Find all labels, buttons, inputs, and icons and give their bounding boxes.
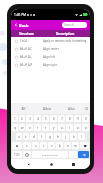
staticText: Alt+H,A,L xyxy=(20,55,32,59)
button[interactable]: t xyxy=(42,124,49,131)
staticText: 0 xyxy=(85,117,87,121)
button[interactable]: c xyxy=(40,142,47,149)
button[interactable]: Backspace xyxy=(80,142,89,149)
button[interactable]: y xyxy=(50,124,57,131)
button[interactable]: 3 xyxy=(26,115,33,122)
staticText: 2 xyxy=(21,117,23,121)
button[interactable]: v xyxy=(48,142,55,149)
button[interactable]: h xyxy=(54,133,61,140)
staticText: u xyxy=(61,126,63,130)
staticText: English (India) xyxy=(42,153,58,156)
button[interactable]: . xyxy=(69,151,77,158)
button[interactable]: j xyxy=(62,133,69,140)
button[interactable]: g xyxy=(46,133,53,140)
button[interactable]: r xyxy=(34,124,41,131)
staticText: g xyxy=(49,135,51,139)
staticText: y xyxy=(53,126,55,130)
button[interactable]: Alt+H,A,C xyxy=(11,45,90,53)
staticText: i xyxy=(69,126,70,130)
staticText: Align left xyxy=(43,55,55,59)
staticText: Search xyxy=(64,23,74,27)
staticText: k xyxy=(73,135,75,139)
button[interactable]: Alive xyxy=(59,103,83,114)
button[interactable]: 6 xyxy=(50,115,57,122)
button[interactable]: More suggestions xyxy=(83,103,90,114)
button[interactable]: 4 xyxy=(34,115,41,122)
button[interactable]: 'All' xyxy=(11,103,35,114)
button[interactable]: Allow xyxy=(35,103,59,114)
staticText: s xyxy=(25,135,27,139)
staticText: Description xyxy=(56,32,75,36)
button[interactable]: Emoji xyxy=(23,151,31,158)
button[interactable]: English (India) xyxy=(32,151,68,158)
staticText: 8 xyxy=(69,117,71,121)
staticText: x xyxy=(35,144,37,148)
staticText: Structure xyxy=(19,32,34,36)
staticText: 'All' xyxy=(21,107,26,111)
staticText: n xyxy=(67,144,69,148)
staticText: a xyxy=(18,135,20,139)
button[interactable]: a xyxy=(16,133,22,140)
staticText: Allow xyxy=(43,107,51,111)
staticText: Alt+H,A,C xyxy=(20,47,33,51)
staticText: v xyxy=(51,144,53,148)
staticText: Back xyxy=(19,23,29,28)
button[interactable]: z xyxy=(23,142,31,149)
staticText: f xyxy=(41,135,43,139)
button[interactable]: Alt+H,A,R xyxy=(11,61,90,69)
button[interactable]: u xyxy=(58,124,65,131)
button[interactable]: Alt+H,A,L xyxy=(11,53,90,61)
button[interactable]: 1 xyxy=(12,115,18,122)
button[interactable]: 5 xyxy=(42,115,49,122)
button[interactable]: p xyxy=(82,124,89,131)
staticText: Alive xyxy=(68,107,75,111)
button[interactable]: q xyxy=(12,124,18,131)
button[interactable]: 2 xyxy=(19,115,25,122)
staticText: . xyxy=(73,153,74,157)
staticText: e xyxy=(29,126,31,130)
button[interactable]: 8 xyxy=(66,115,73,122)
staticText: o xyxy=(77,126,79,130)
button[interactable]: m xyxy=(72,142,79,149)
staticText: c xyxy=(43,144,45,148)
staticText: b xyxy=(59,144,61,148)
button[interactable]: Enter xyxy=(78,151,89,158)
button[interactable]: 7 xyxy=(58,115,65,122)
button[interactable]: b xyxy=(56,142,63,149)
button[interactable]: l xyxy=(78,133,85,140)
staticText: 4 xyxy=(37,117,39,121)
button[interactable]: e xyxy=(26,124,33,131)
button[interactable]: Recents xyxy=(68,159,78,169)
staticText: p xyxy=(85,126,87,130)
staticText: Alt+H,A,R xyxy=(20,63,33,67)
button[interactable]: Back xyxy=(11,20,90,30)
button[interactable]: Search xyxy=(62,22,87,28)
button[interactable]: s xyxy=(23,133,29,140)
button[interactable]: 0 xyxy=(82,115,89,122)
button[interactable]: Back xyxy=(23,159,33,169)
staticText: 9 xyxy=(77,117,79,121)
staticText: 6 xyxy=(53,117,55,121)
button[interactable]: Shift xyxy=(12,142,22,149)
button[interactable]: w xyxy=(19,124,25,131)
staticText: w xyxy=(21,126,24,130)
staticText: 7 xyxy=(61,117,63,121)
staticText: r xyxy=(37,126,39,130)
button[interactable]: i xyxy=(66,124,73,131)
button[interactable]: Home xyxy=(46,159,56,169)
button[interactable]: x xyxy=(32,142,39,149)
button[interactable]: n xyxy=(64,142,71,149)
button[interactable]: ?123 xyxy=(12,151,22,158)
staticText: 3 xyxy=(29,117,31,121)
staticText: m xyxy=(74,144,77,148)
staticText: l xyxy=(81,135,82,139)
button[interactable]: k xyxy=(70,133,77,140)
other: Back xyxy=(14,23,18,27)
staticText: Ctrl+I xyxy=(20,39,28,43)
staticText: q xyxy=(14,126,16,130)
button[interactable]: o xyxy=(74,124,81,131)
button[interactable]: d xyxy=(30,133,37,140)
button[interactable]: Ctrl+I xyxy=(11,37,90,45)
button[interactable]: f xyxy=(38,133,45,140)
button[interactable]: 9 xyxy=(74,115,81,122)
